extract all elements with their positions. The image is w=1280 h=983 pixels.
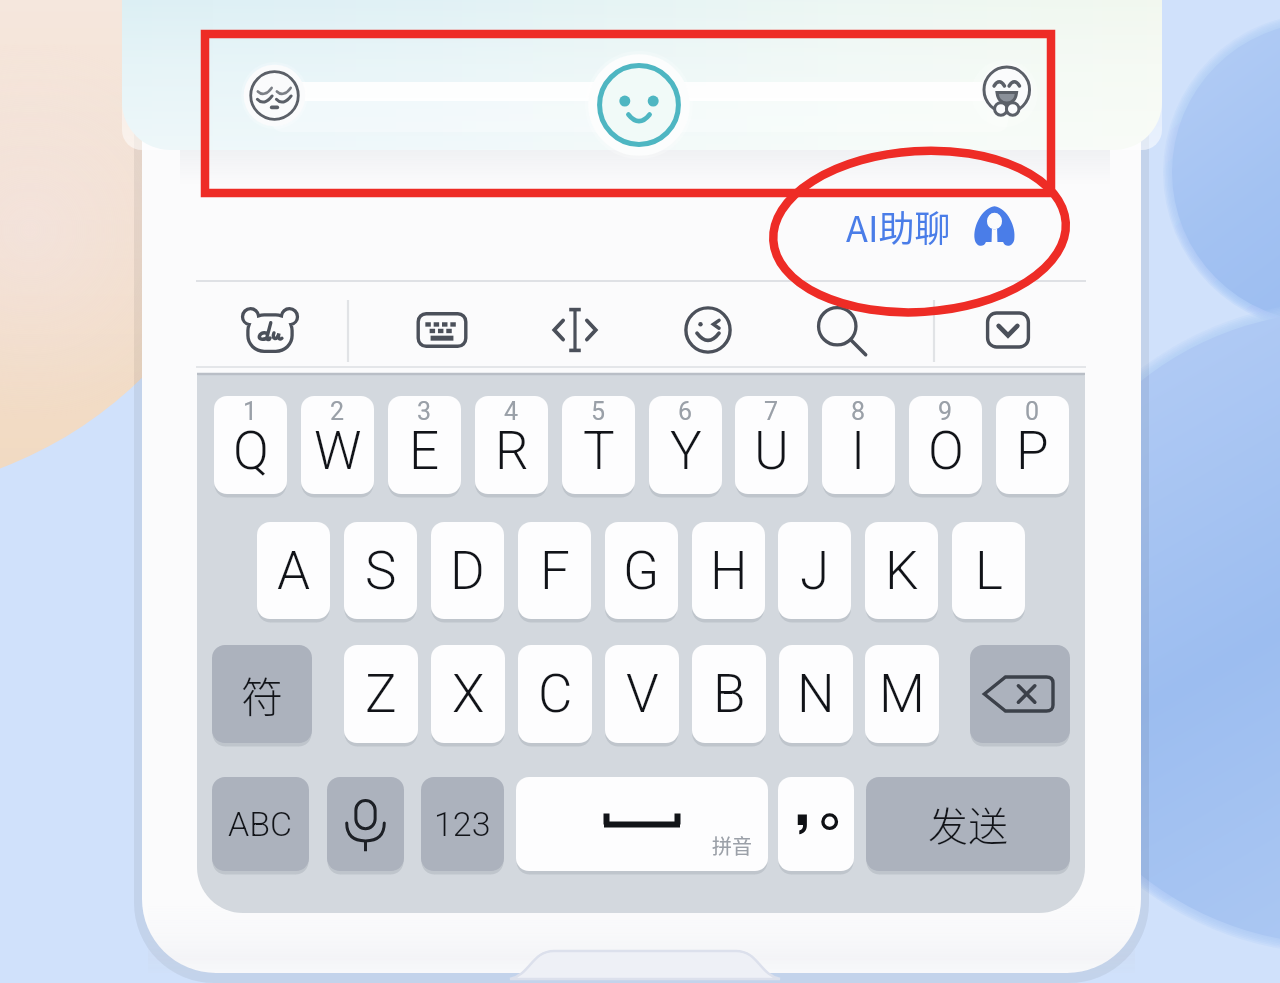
staticText: R: [495, 420, 529, 482]
button[interactable]: 发送: [866, 777, 1070, 871]
staticText: E: [409, 420, 440, 482]
staticText: J: [800, 540, 830, 602]
button[interactable]: 3: [388, 396, 461, 494]
staticText: 3: [417, 397, 432, 426]
staticText: 0: [1025, 397, 1040, 426]
staticText: 123: [434, 804, 491, 844]
staticText: M: [879, 663, 925, 725]
button[interactable]: Sad emoji: [241, 62, 308, 129]
staticText: Q: [233, 420, 269, 482]
button[interactable]: Voice input: [327, 777, 404, 871]
staticText: F: [540, 540, 570, 602]
button[interactable]: Space: [516, 777, 768, 871]
staticText: O: [928, 420, 964, 482]
staticText: P: [1016, 420, 1049, 482]
staticText: S: [365, 540, 397, 602]
button[interactable]: 123: [421, 777, 504, 871]
button[interactable]: 2: [301, 396, 374, 494]
button[interactable]: V: [605, 645, 679, 743]
button[interactable]: B: [692, 645, 766, 743]
button[interactable]: 1: [214, 396, 287, 494]
button[interactable]: 7: [735, 396, 808, 494]
staticText: C: [538, 663, 573, 725]
staticText: Y: [670, 420, 702, 482]
button[interactable]: Emotion slider thumb: [585, 51, 693, 159]
button[interactable]: 0: [996, 396, 1069, 494]
staticText: Z: [365, 663, 397, 725]
staticText: 8: [851, 397, 866, 426]
button[interactable]: N: [779, 645, 853, 743]
staticText: 7: [764, 397, 779, 426]
staticText: 拼音: [712, 831, 752, 860]
button[interactable]: H: [692, 522, 765, 619]
button[interactable]: Move cursor: [541, 296, 609, 364]
staticText: V: [626, 663, 659, 725]
button[interactable]: 符: [212, 645, 312, 743]
button[interactable]: 5: [562, 396, 635, 494]
button[interactable]: A: [257, 522, 330, 619]
staticText: AI助聊: [846, 200, 951, 252]
staticText: W: [314, 420, 362, 482]
staticText: ABC: [228, 804, 293, 844]
button[interactable]: Hide keyboard: [974, 296, 1042, 364]
staticText: 符: [241, 664, 284, 725]
button[interactable]: 8: [822, 396, 895, 494]
staticText: 2: [330, 397, 345, 426]
button[interactable]: D: [431, 522, 504, 619]
staticText: G: [623, 540, 660, 602]
button[interactable]: Comma and period: [778, 777, 854, 871]
button[interactable]: 4: [475, 396, 548, 494]
button[interactable]: Search: [807, 296, 875, 364]
button[interactable]: C: [518, 645, 592, 743]
staticText: L: [975, 540, 1003, 602]
button[interactable]: Emoji: [674, 296, 742, 364]
staticText: A: [277, 540, 311, 602]
staticText: I: [851, 420, 866, 482]
staticText: 5: [591, 397, 606, 426]
staticText: D: [450, 540, 485, 602]
button[interactable]: 6: [649, 396, 722, 494]
button[interactable]: Keyboard layout: [408, 296, 476, 364]
button[interactable]: K: [865, 522, 938, 619]
button[interactable]: S: [344, 522, 417, 619]
staticText: 9: [938, 397, 953, 426]
staticText: X: [452, 663, 485, 725]
staticText: 发送: [928, 795, 1008, 853]
button[interactable]: Laughing emoji: [971, 60, 1038, 127]
button[interactable]: Baidu input settings: [236, 296, 304, 364]
staticText: N: [797, 663, 835, 725]
staticText: 4: [504, 397, 519, 426]
button[interactable]: X: [431, 645, 505, 743]
button[interactable]: 9: [909, 396, 982, 494]
staticText: 1: [243, 397, 258, 426]
button[interactable]: ABC: [212, 777, 309, 871]
staticText: T: [583, 420, 615, 482]
staticText: H: [710, 540, 748, 602]
button[interactable]: Backspace: [970, 645, 1070, 743]
staticText: U: [754, 420, 789, 482]
staticText: K: [885, 540, 919, 602]
button[interactable]: L: [952, 522, 1025, 619]
button[interactable]: Z: [344, 645, 418, 743]
button[interactable]: M: [865, 645, 939, 743]
button[interactable]: AI助聊: [846, 197, 1016, 255]
staticText: B: [713, 663, 746, 725]
staticText: 6: [678, 397, 693, 426]
button[interactable]: J: [778, 522, 851, 619]
button[interactable]: F: [518, 522, 591, 619]
button[interactable]: G: [605, 522, 678, 619]
